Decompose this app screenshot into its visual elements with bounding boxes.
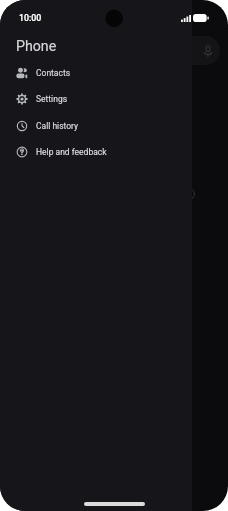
staticText: Call history: [36, 121, 79, 131]
staticText: Phone: [16, 38, 57, 55]
button[interactable]: Settings: [0, 85, 192, 112]
other: Voice search: [204, 46, 212, 57]
button[interactable]: Contacts: [0, 59, 192, 86]
staticText: 10:00: [19, 13, 42, 23]
button[interactable]: Call history: [0, 112, 192, 139]
button[interactable]: ?: [0, 138, 192, 165]
staticText: Help and feedback: [36, 147, 107, 157]
staticText: ?: [20, 148, 24, 157]
staticText: Settings: [36, 94, 68, 104]
staticText: Contacts: [36, 68, 71, 78]
button[interactable]: Dial pad: [183, 188, 195, 200]
button[interactable]: Voice search: [12, 36, 220, 65]
